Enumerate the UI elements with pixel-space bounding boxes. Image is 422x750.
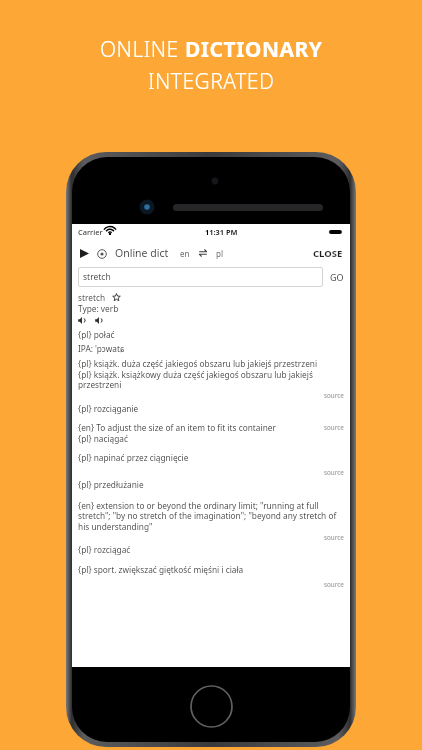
staticText: {pl} książk. książkowy duża część jakieg… xyxy=(78,369,344,391)
button[interactable]: pl xyxy=(216,248,223,259)
staticText: INTEGRATED xyxy=(148,67,275,96)
staticText: Online dict xyxy=(115,246,169,260)
staticText: {en} extension to or beyond the ordinary… xyxy=(78,500,344,533)
staticText: Type: verb xyxy=(78,303,344,314)
staticText: stretch xyxy=(83,271,111,283)
staticText: GO xyxy=(330,271,344,283)
staticText: source xyxy=(324,533,344,542)
button[interactable]: Favourite xyxy=(111,292,122,303)
staticText: source xyxy=(324,391,344,400)
button[interactable]: Help xyxy=(94,246,109,261)
staticText: CLOSE xyxy=(313,247,343,260)
staticText: {pl} przedłużanie xyxy=(78,479,344,490)
staticText: stretch xyxy=(78,292,106,303)
staticText: ONLINE xyxy=(100,35,185,64)
staticText: {pl} napinać przez ciągnięcie xyxy=(78,452,344,463)
staticText: {pl} sport. zwiększać giętkość mięśni i … xyxy=(78,564,344,575)
staticText: {en} To adjust the size of an item to fi… xyxy=(78,422,344,433)
staticText: Carrier xyxy=(78,227,103,237)
button[interactable]: stretch xyxy=(78,267,323,287)
button[interactable]: GO xyxy=(330,271,344,283)
button[interactable]: Home xyxy=(190,685,233,728)
button[interactable]: CLOSE xyxy=(313,247,343,260)
staticText: source xyxy=(324,423,344,432)
staticText: {pl} rozciągać xyxy=(78,544,344,555)
button[interactable]: Pronounce xyxy=(95,315,106,326)
staticText: source xyxy=(324,468,344,477)
staticText: 11:31 PM xyxy=(205,227,238,237)
button[interactable]: en xyxy=(180,248,190,259)
button[interactable]: Swap languages xyxy=(197,247,209,259)
staticText: source xyxy=(324,580,344,589)
staticText: {pl} połać xyxy=(78,329,344,340)
button[interactable]: Pronounce xyxy=(78,315,89,326)
button[interactable]: Play xyxy=(77,246,92,261)
staticText: DICTIONARY xyxy=(185,35,323,64)
staticText: en xyxy=(180,248,190,259)
staticText: {pl} naciągać xyxy=(78,433,344,444)
staticText: {pl} książk. duża część jakiegoś obszaru… xyxy=(78,358,344,369)
staticText: IPA: 'pɔwatɕ xyxy=(78,343,344,354)
staticText: pl xyxy=(216,248,223,259)
staticText: {pl} rozciąganie xyxy=(78,403,344,414)
